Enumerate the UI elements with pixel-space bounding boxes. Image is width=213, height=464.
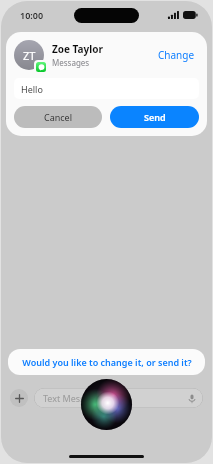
button[interactable]: Text Message bbox=[34, 388, 203, 408]
button[interactable]: Siri bbox=[81, 379, 132, 430]
staticText: Messages bbox=[52, 57, 90, 68]
button[interactable]: Voice input bbox=[185, 392, 198, 405]
button[interactable]: Add attachment bbox=[10, 389, 28, 407]
staticText: Zoe Taylor bbox=[52, 42, 103, 56]
staticText: Send bbox=[144, 111, 166, 123]
staticText: 10:00 bbox=[20, 9, 44, 21]
button[interactable]: Send bbox=[110, 106, 199, 128]
button[interactable]: Hello bbox=[14, 78, 199, 99]
staticText: Cancel bbox=[44, 111, 73, 123]
button[interactable]: Change bbox=[154, 44, 199, 66]
staticText: Would you like to change it, or send it? bbox=[22, 356, 192, 368]
staticText: Text Message bbox=[43, 392, 101, 404]
button[interactable]: Would you like to change it, or send it? bbox=[8, 349, 205, 375]
staticText: Hello bbox=[21, 83, 43, 95]
button[interactable]: Cancel bbox=[14, 106, 102, 128]
staticText: ZT bbox=[23, 48, 36, 63]
staticText: Change bbox=[158, 48, 195, 62]
